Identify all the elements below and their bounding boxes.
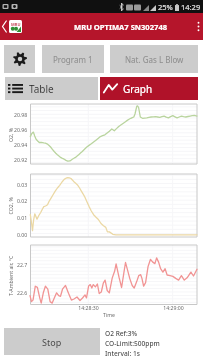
staticText: O2, % — [7, 127, 14, 142]
staticText: T-Ambient air, °C — [7, 255, 14, 296]
staticText: 0.03 — [17, 181, 28, 188]
staticText: MRU — [11, 22, 21, 27]
staticText: MRU OPTIMA7 SN302748 — [74, 22, 168, 32]
staticText: 20.94 — [14, 141, 28, 148]
staticText: Time — [103, 311, 115, 318]
staticText: 14:28:30 — [78, 304, 99, 311]
staticText: 0.00 — [17, 231, 28, 238]
staticText: Graph — [123, 82, 153, 96]
button[interactable]: Program 1 — [42, 45, 104, 73]
staticText: 25% — [158, 2, 173, 12]
staticText: CO2, % — [6, 196, 13, 214]
button[interactable]: More options — [194, 13, 203, 40]
staticText: 20.92 — [14, 156, 28, 163]
staticText: 20.96 — [14, 126, 28, 133]
staticText: Table — [29, 82, 54, 96]
staticText: 0.01 — [17, 214, 28, 221]
button[interactable]: Stop — [4, 328, 100, 355]
staticText: Interval: 1s — [105, 349, 141, 358]
staticText: Stop — [42, 336, 62, 348]
button[interactable]: Settings — [4, 45, 35, 73]
button[interactable]: Table — [5, 77, 98, 100]
staticText: 22.7 — [17, 261, 28, 268]
staticText: 0.02 — [17, 197, 28, 204]
staticText: Program 1 — [53, 54, 93, 65]
button[interactable]: Nat. Gas L Blow — [110, 45, 198, 73]
button[interactable]: Graph — [100, 77, 198, 100]
staticText: 22.6 — [17, 289, 28, 296]
staticText: 20.98 — [14, 111, 28, 118]
staticText: Nat. Gas L Blow — [125, 54, 184, 65]
button[interactable]: Back — [0, 13, 9, 40]
staticText: O2 Ref:3% — [105, 329, 138, 338]
staticText: 14:29 — [181, 2, 201, 12]
staticText: CO-Limit:500ppm — [105, 339, 160, 348]
staticText: 14:29:00 — [163, 304, 184, 311]
